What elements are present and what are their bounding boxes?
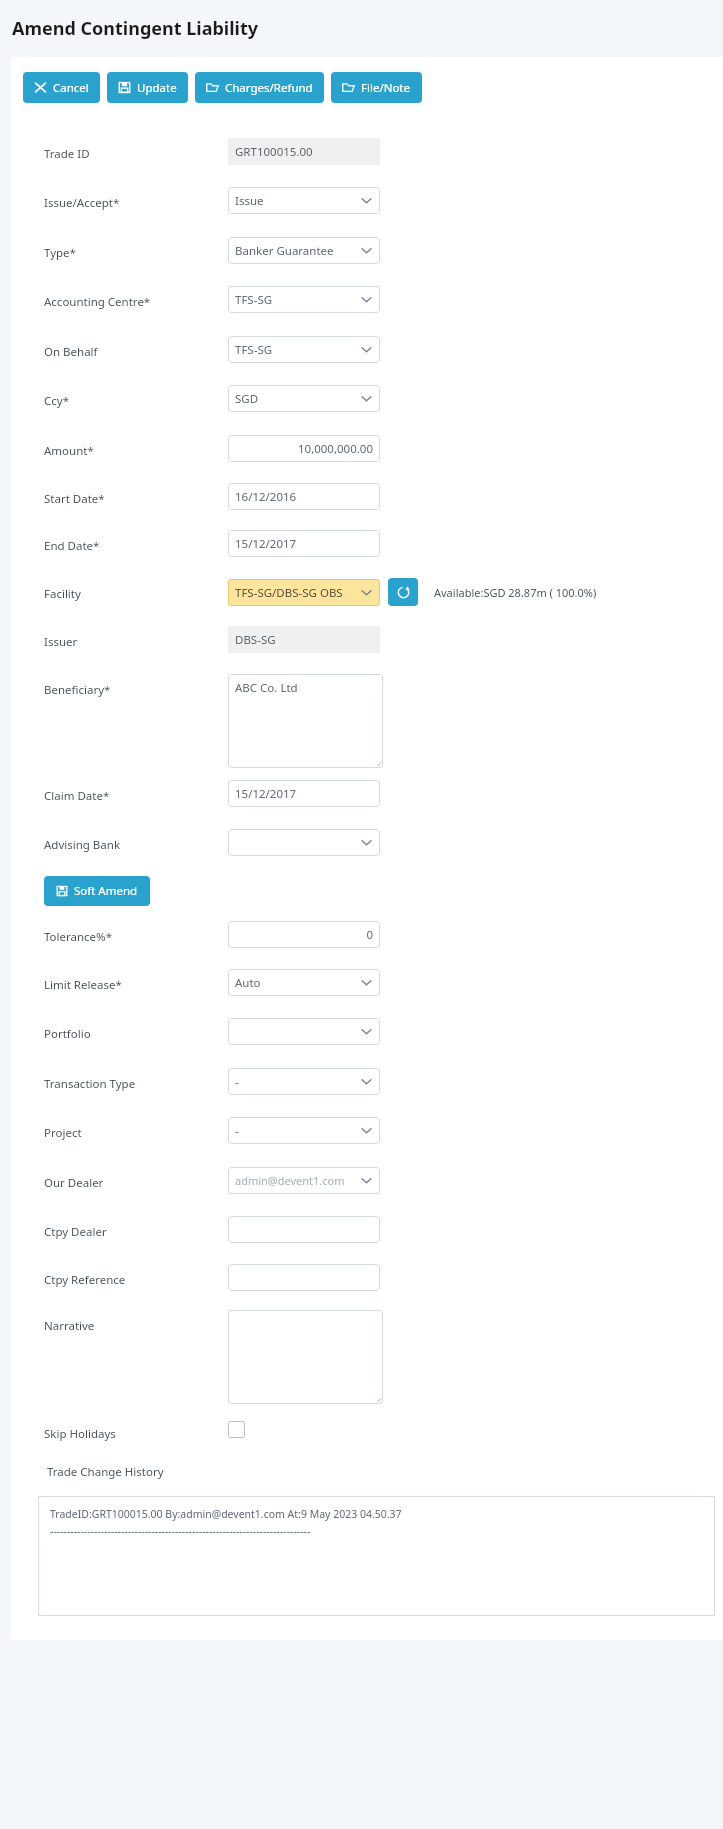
- button[interactable]: Auto: [228, 969, 380, 996]
- staticText: Cancel: [53, 80, 89, 96]
- staticText: End Date*: [44, 538, 100, 554]
- button[interactable]: 10,000,000.00: [228, 435, 380, 462]
- staticText: TFS-SG: [235, 342, 357, 358]
- button[interactable]: 15/12/2017: [228, 780, 380, 807]
- staticText: TFS-SG/DBS-SG OBS: [235, 585, 357, 601]
- staticText: GRT100015.00: [235, 144, 313, 160]
- staticText: Transaction Type: [44, 1076, 136, 1092]
- staticText: Amend Contingent Liability: [12, 16, 259, 41]
- staticText: Auto: [235, 975, 357, 991]
- button[interactable]: TFS-SG: [228, 286, 380, 313]
- button[interactable]: Issue: [228, 187, 380, 214]
- staticText: 16/12/2016: [235, 489, 373, 505]
- staticText: Update: [137, 80, 177, 96]
- staticText: Narrative: [44, 1318, 95, 1334]
- button[interactable]: [228, 1216, 380, 1243]
- staticText: Advising Bank: [44, 837, 121, 853]
- staticText: Accounting Centre*: [44, 294, 151, 310]
- staticText: Facility: [44, 586, 81, 602]
- button[interactable]: -: [228, 1068, 380, 1095]
- staticText: TradeID:GRT100015.00 By:admin@devent1.co…: [50, 1507, 402, 1521]
- button[interactable]: TradeID:GRT100015.00 By:admin@devent1.co…: [38, 1496, 715, 1616]
- staticText: Tolerance%*: [44, 929, 112, 945]
- staticText: Trade ID: [44, 146, 90, 162]
- button[interactable]: Skip Holidays checkbox: [228, 1421, 245, 1438]
- staticText: 0: [235, 927, 373, 943]
- button[interactable]: admin@devent1.com: [228, 1167, 380, 1194]
- staticText: Banker Guarantee: [235, 243, 357, 259]
- button[interactable]: Refresh facility: [388, 578, 418, 606]
- staticText: Portfolio: [44, 1026, 91, 1042]
- staticText: SGD: [235, 391, 357, 407]
- button[interactable]: [228, 829, 380, 856]
- button[interactable]: ABC Co. Ltd: [228, 674, 383, 768]
- button[interactable]: Banker Guarantee: [228, 237, 380, 264]
- button[interactable]: TFS-SG: [228, 336, 380, 363]
- staticText: Amount*: [44, 443, 94, 459]
- staticText: -: [235, 1123, 357, 1139]
- button[interactable]: TFS-SG/DBS-SG OBS: [228, 579, 380, 606]
- staticText: Our Dealer: [44, 1175, 104, 1191]
- button[interactable]: 15/12/2017: [228, 530, 380, 557]
- staticText: Project: [44, 1125, 82, 1141]
- button[interactable]: [228, 1310, 383, 1404]
- staticText: Start Date*: [44, 491, 105, 507]
- button[interactable]: Update: [107, 72, 188, 103]
- staticText: TFS-SG: [235, 292, 357, 308]
- staticText: Claim Date*: [44, 788, 110, 804]
- staticText: Issuer: [44, 634, 78, 650]
- staticText: Issue: [235, 193, 357, 209]
- staticText: ----------------------------------------…: [50, 1524, 311, 1538]
- button[interactable]: File/Note: [331, 72, 422, 103]
- staticText: Beneficiary*: [44, 682, 111, 698]
- button[interactable]: Charges/Refund: [195, 72, 324, 103]
- staticText: -: [235, 1074, 357, 1090]
- staticText: admin@devent1.com: [235, 1173, 357, 1188]
- staticText: Skip Holidays: [44, 1426, 116, 1442]
- button[interactable]: [228, 1264, 380, 1291]
- staticText: Soft Amend: [74, 883, 138, 899]
- button[interactable]: 0: [228, 921, 380, 948]
- staticText: DBS-SG: [235, 632, 276, 648]
- button[interactable]: -: [228, 1117, 380, 1144]
- button[interactable]: Soft Amend: [44, 876, 150, 906]
- staticText: ABC Co. Ltd: [235, 680, 298, 696]
- staticText: Type*: [44, 245, 76, 261]
- staticText: Available:SGD 28.87m ( 100.0%): [434, 585, 597, 600]
- staticText: 15/12/2017: [235, 536, 373, 552]
- button[interactable]: Cancel: [23, 72, 100, 103]
- staticText: File/Note: [361, 80, 411, 96]
- button[interactable]: 16/12/2016: [228, 483, 380, 510]
- staticText: Trade Change History: [47, 1464, 164, 1480]
- staticText: Ctpy Dealer: [44, 1224, 107, 1240]
- button[interactable]: SGD: [228, 385, 380, 412]
- staticText: Issue/Accept*: [44, 195, 120, 211]
- staticText: Limit Release*: [44, 977, 122, 993]
- staticText: Ctpy Reference: [44, 1272, 126, 1288]
- button[interactable]: [228, 1018, 380, 1045]
- staticText: Charges/Refund: [225, 80, 313, 96]
- staticText: Ccy*: [44, 393, 69, 409]
- staticText: 10,000,000.00: [235, 441, 373, 457]
- staticText: On Behalf: [44, 344, 98, 360]
- staticText: 15/12/2017: [235, 786, 373, 802]
